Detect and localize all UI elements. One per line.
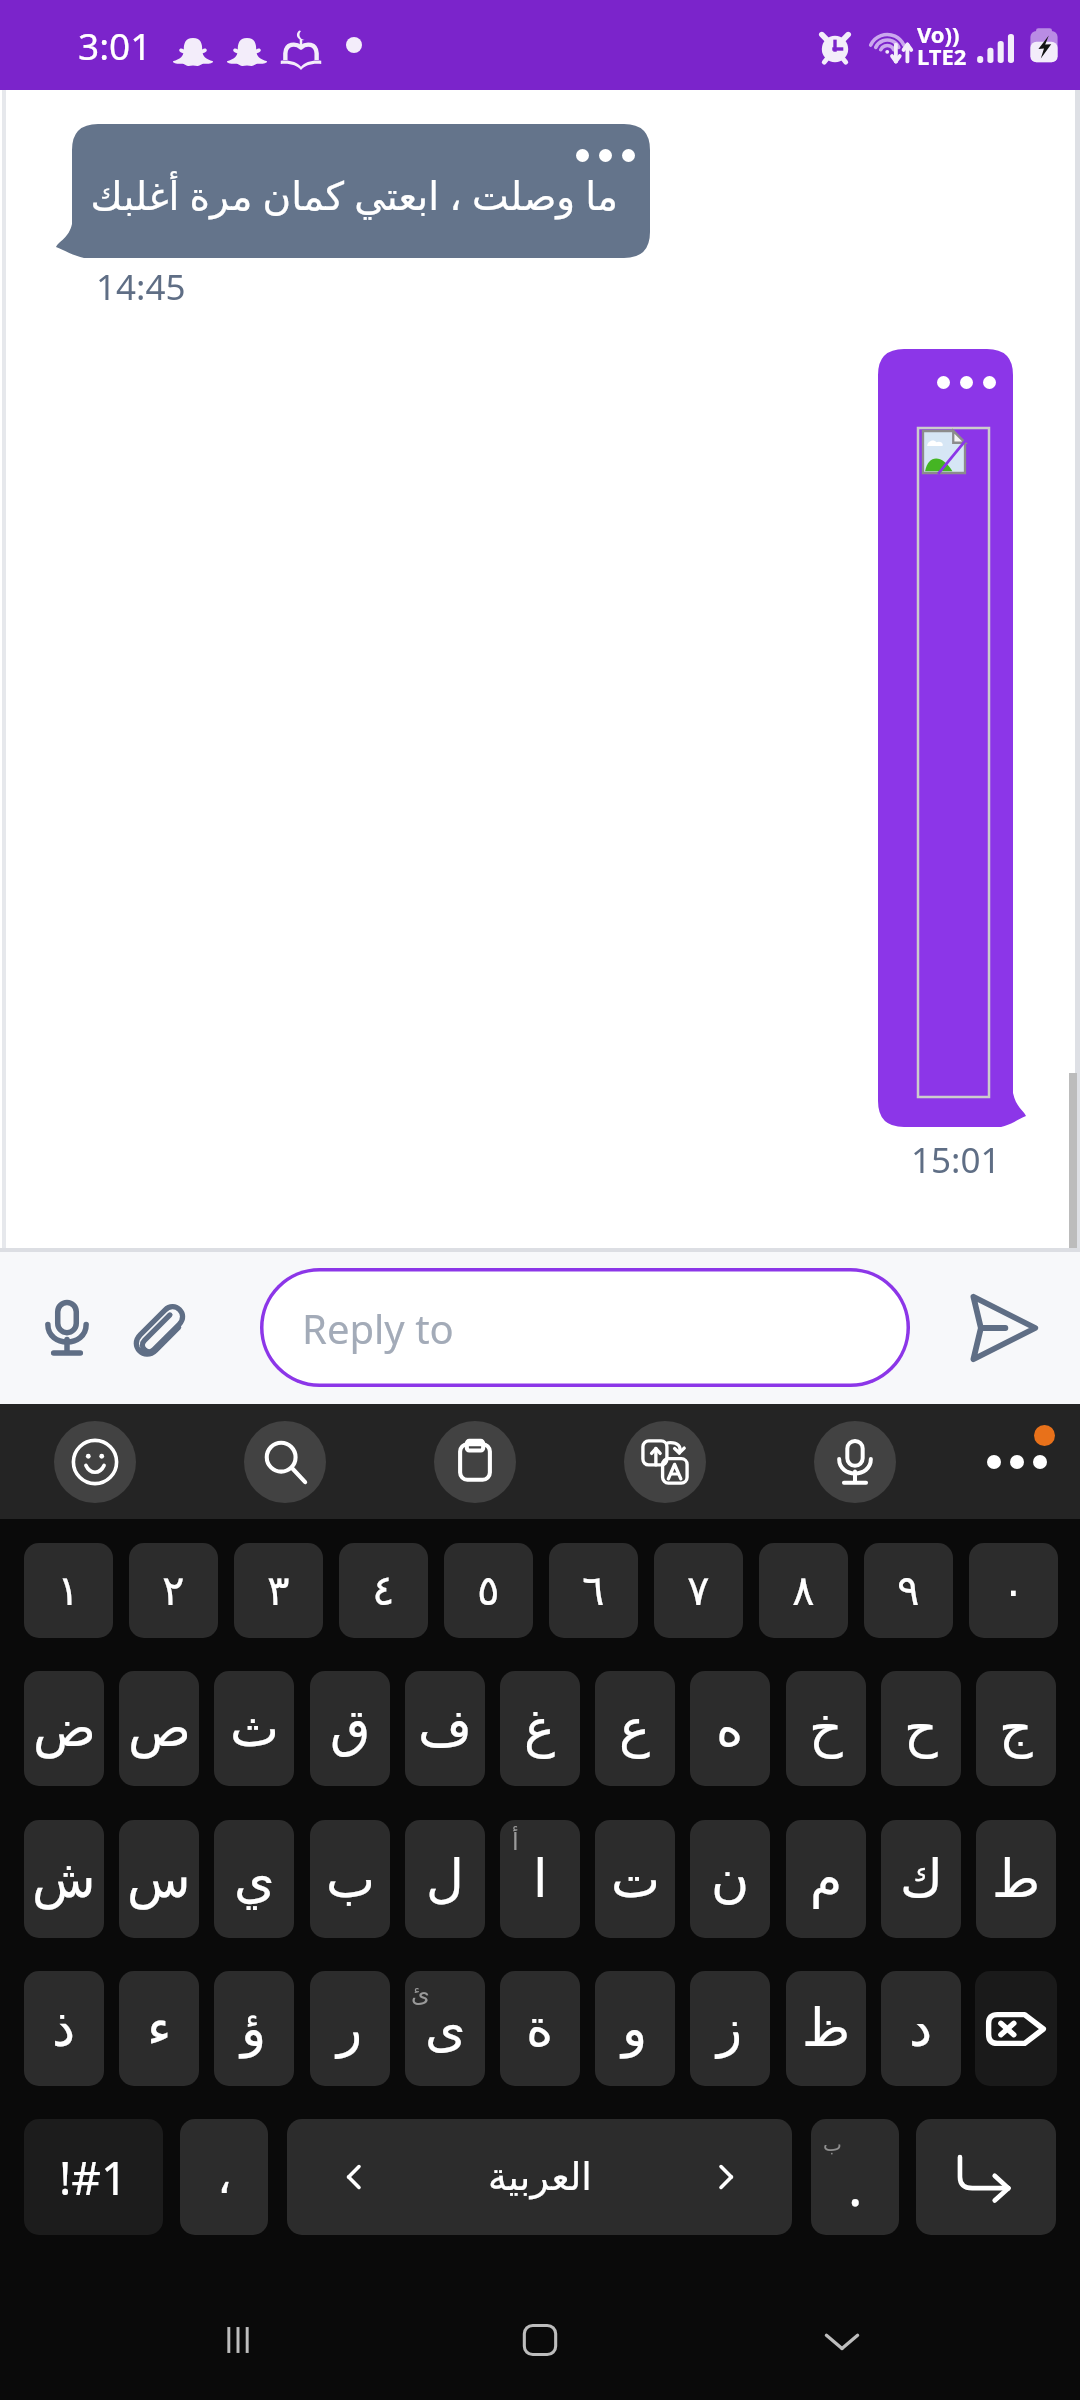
button[interactable]: س: [119, 1820, 199, 1938]
button[interactable]: خ: [786, 1671, 866, 1786]
button[interactable]: ر: [310, 1971, 390, 2086]
button[interactable]: ٤: [339, 1543, 428, 1638]
staticText: ١: [57, 1566, 80, 1615]
button[interactable]: ه: [690, 1671, 770, 1786]
staticText: !#1: [59, 2146, 128, 2209]
staticText: 3:01: [78, 20, 152, 70]
staticText: ء: [147, 1998, 172, 2059]
button[interactable]: ن: [690, 1820, 770, 1938]
button[interactable]: ض: [24, 1671, 104, 1786]
button[interactable]: Translate: [624, 1421, 706, 1503]
button[interactable]: ش: [24, 1820, 104, 1938]
button[interactable]: ذ: [24, 1971, 104, 2086]
button[interactable]: ٧: [654, 1543, 743, 1638]
button[interactable]: ت: [595, 1820, 675, 1938]
button[interactable]: Clipboard: [434, 1421, 516, 1503]
staticText: ت: [611, 1849, 660, 1910]
button[interactable]: ؤ: [214, 1971, 294, 2086]
button[interactable]: ف: [405, 1671, 485, 1786]
staticText: ى: [425, 1998, 466, 2059]
staticText: ٥: [477, 1566, 500, 1615]
button[interactable]: More options: [976, 1421, 1058, 1503]
staticText: العربية: [488, 2155, 592, 2199]
staticText: س: [127, 1849, 191, 1910]
staticText: و: [622, 1998, 648, 2059]
staticText: ف: [418, 1698, 472, 1759]
staticText: ة: [526, 1998, 554, 2059]
button[interactable]: Voice input: [814, 1421, 896, 1503]
button[interactable]: ي: [214, 1820, 294, 1938]
staticText: ض: [33, 1698, 96, 1759]
staticText: ٦: [582, 1566, 605, 1615]
staticText: م: [810, 1849, 843, 1910]
button[interactable]: ب: [811, 2119, 899, 2235]
button[interactable]: Backspace: [975, 1971, 1057, 2086]
staticText: ئ: [411, 1980, 430, 2008]
button[interactable]: العربية: [287, 2119, 792, 2235]
button[interactable]: ٥: [444, 1543, 533, 1638]
staticText: ٢: [162, 1566, 185, 1615]
button[interactable]: د: [881, 1971, 961, 2086]
staticText: ج: [999, 1698, 1033, 1759]
button[interactable]: ج: [976, 1671, 1056, 1786]
staticText: ب: [326, 1849, 375, 1910]
staticText: ،: [217, 2150, 232, 2204]
button[interactable]: ز: [690, 1971, 770, 2086]
button[interactable]: Voice message: [24, 1285, 110, 1371]
button[interactable]: ص: [119, 1671, 199, 1786]
button[interactable]: Search: [244, 1421, 326, 1503]
button[interactable]: ئ: [405, 1971, 485, 2086]
button[interactable]: ٦: [549, 1543, 638, 1638]
staticText: 14:45: [96, 263, 186, 311]
button[interactable]: Send: [958, 1282, 1050, 1374]
button[interactable]: ة: [500, 1971, 580, 2086]
staticText: ص: [128, 1698, 191, 1759]
button[interactable]: ء: [119, 1971, 199, 2086]
staticText: ٨: [792, 1566, 815, 1615]
staticText: Vo)) LTE2: [917, 19, 967, 71]
staticText: ث: [230, 1698, 279, 1759]
button[interactable]: أ: [500, 1820, 580, 1938]
button[interactable]: ،: [180, 2119, 268, 2235]
button[interactable]: ح: [881, 1671, 961, 1786]
staticText: Reply to: [302, 1301, 454, 1355]
button[interactable]: Enter: [916, 2119, 1056, 2235]
button[interactable]: غ: [500, 1671, 580, 1786]
button[interactable]: ع: [595, 1671, 675, 1786]
button[interactable]: ب: [310, 1820, 390, 1938]
staticText: 15:01: [911, 1136, 1001, 1184]
staticText: ما وصلت ، ابعتي كمان مرة أغلبك: [90, 168, 618, 221]
staticText: غ: [524, 1698, 556, 1759]
button[interactable]: م: [786, 1820, 866, 1938]
staticText: ط: [992, 1849, 1041, 1910]
button[interactable]: ٨: [759, 1543, 848, 1638]
button[interactable]: Attach file: [117, 1285, 203, 1371]
button[interactable]: ١: [24, 1543, 113, 1638]
button[interactable]: Reply to: [260, 1268, 910, 1387]
staticText: ٣: [267, 1566, 290, 1615]
button[interactable]: ٩: [864, 1543, 953, 1638]
staticText: ل: [426, 1849, 464, 1910]
staticText: .: [848, 2148, 863, 2222]
staticText: ق: [330, 1698, 371, 1759]
staticText: ه: [716, 1698, 744, 1759]
button[interactable]: ث: [214, 1671, 294, 1786]
button[interactable]: ٠: [969, 1543, 1058, 1638]
staticText: ا: [533, 1849, 548, 1910]
button[interactable]: و: [595, 1971, 675, 2086]
button[interactable]: !#1: [24, 2119, 163, 2235]
button[interactable]: ق: [310, 1671, 390, 1786]
button[interactable]: ٣: [234, 1543, 323, 1638]
button[interactable]: ك: [881, 1820, 961, 1938]
staticText: ٩: [897, 1566, 920, 1615]
button[interactable]: Recents: [193, 2295, 283, 2385]
staticText: ش: [32, 1849, 96, 1910]
button[interactable]: Hide keyboard: [797, 2295, 887, 2385]
button[interactable]: Home: [495, 2295, 585, 2385]
button[interactable]: Emoji: [54, 1421, 136, 1503]
staticText: د: [909, 1998, 933, 2059]
button[interactable]: ظ: [786, 1971, 866, 2086]
button[interactable]: ٢: [129, 1543, 218, 1638]
button[interactable]: ط: [976, 1820, 1056, 1938]
button[interactable]: ل: [405, 1820, 485, 1938]
